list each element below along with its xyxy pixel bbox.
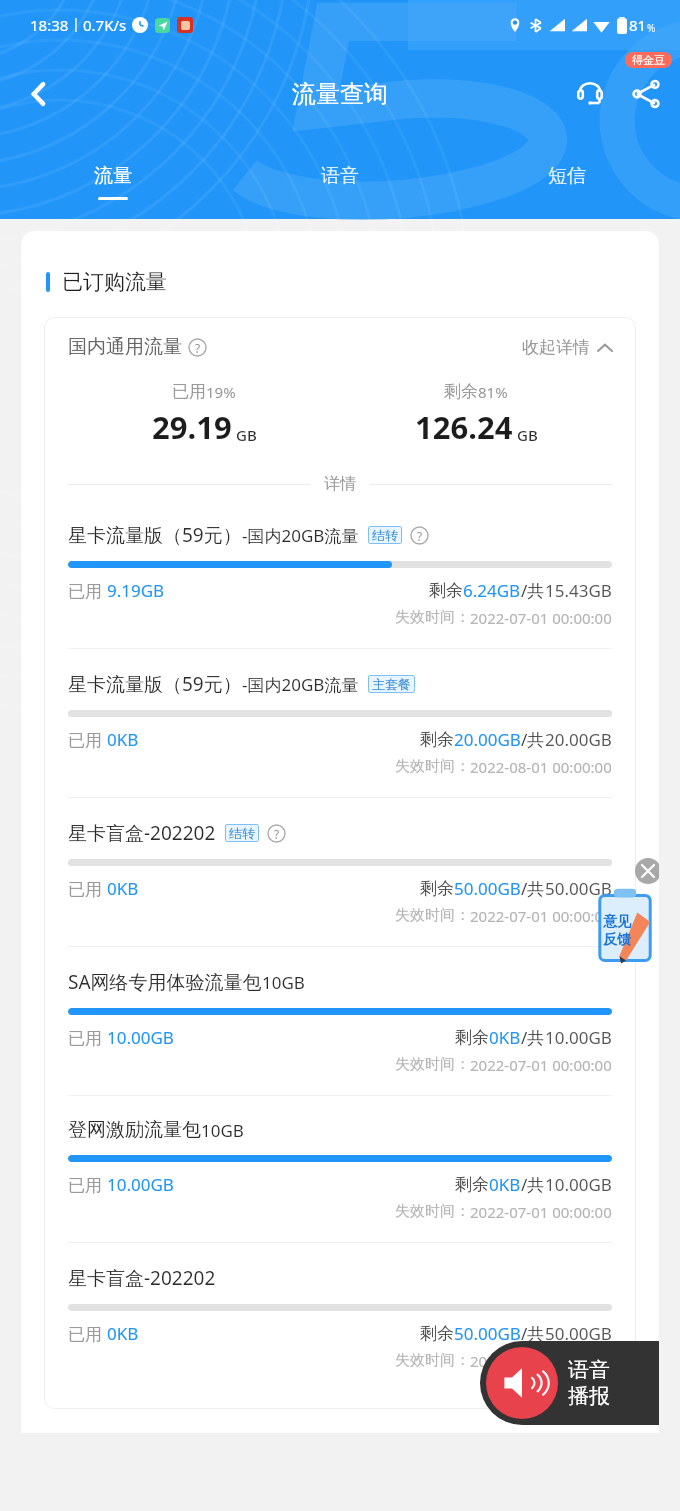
staticText: 短信 — [548, 164, 586, 188]
button[interactable]: 登网激励流量包 — [68, 1096, 612, 1243]
staticText: 18:38 — [30, 15, 69, 35]
staticText: 已订购流量 — [62, 269, 167, 295]
staticText: 50.00GB — [454, 877, 521, 900]
staticText: 已用 — [68, 1322, 107, 1345]
staticText: 19% — [206, 382, 236, 402]
staticText: 50.00GB — [454, 1322, 521, 1345]
staticText: -国内20GB流量 — [242, 524, 359, 547]
staticText: 流量查询 — [292, 79, 388, 109]
staticText: 50.00GB — [545, 877, 612, 900]
staticText: 已用 — [68, 579, 107, 602]
staticText: 失效时间： — [395, 1351, 470, 1370]
staticText: 81% — [478, 382, 508, 402]
staticText: 已用 — [68, 877, 107, 900]
staticText: 0KB — [489, 1026, 521, 1049]
staticText: 流量 — [94, 164, 132, 188]
button[interactable]: 收起详情 — [522, 337, 612, 358]
button[interactable]: 短信 — [453, 149, 680, 215]
staticText: 剩余 — [444, 381, 478, 402]
staticText: ? — [417, 528, 423, 544]
button[interactable]: 语音 — [226, 149, 453, 215]
staticText: 剩余 — [420, 729, 454, 750]
staticText: 剩余 — [455, 1174, 489, 1195]
button[interactable]: SA网络专用体验流量包 — [68, 947, 612, 1096]
staticText: 主套餐 — [372, 676, 411, 692]
button[interactable]: Share — [618, 66, 674, 122]
staticText: 失效时间： — [395, 906, 470, 925]
staticText: 15.43GB — [545, 579, 612, 602]
staticText: % — [647, 21, 656, 35]
staticText: /共 — [521, 1322, 545, 1345]
staticText: 10.00GB — [545, 1026, 612, 1049]
staticText: 结转 — [229, 825, 255, 841]
button[interactable]: 意见反馈 — [597, 888, 653, 962]
staticText: 0KB — [107, 877, 139, 900]
staticText: /共 — [521, 877, 545, 900]
staticText: 已用 — [68, 728, 107, 751]
staticText: GB — [517, 425, 538, 445]
staticText: 29.19 — [152, 406, 232, 448]
staticText: 50.00GB — [545, 1322, 612, 1345]
staticText: 10.00GB — [107, 1173, 174, 1196]
staticText: 反馈 — [603, 931, 631, 949]
staticText: 详情 — [324, 474, 356, 494]
staticText: 126.24 — [415, 406, 513, 448]
button[interactable]: 星卡盲盒-202202 — [68, 1243, 612, 1391]
staticText: 2022-07-01 00:00:00 — [470, 608, 612, 628]
staticText: 播报 — [568, 1383, 610, 1409]
staticText: 2022-07-01 00:00:00 — [470, 1055, 612, 1075]
staticText: 10GB — [262, 971, 305, 994]
staticText: 10.00GB — [545, 1173, 612, 1196]
staticText: 星卡流量版（59元） — [68, 522, 242, 548]
staticText: 已用 — [68, 1173, 107, 1196]
button[interactable]: 星卡流量版（59元） — [68, 649, 612, 798]
staticText: 81 — [629, 15, 647, 35]
staticText: 失效时间： — [395, 757, 470, 776]
staticText: 20.00GB — [545, 728, 612, 751]
staticText: SA网络专用体验流量包 — [68, 969, 262, 995]
staticText: 国内通用流量 — [68, 335, 182, 359]
staticText: /共 — [521, 1026, 545, 1049]
staticText: 失效时间： — [395, 1055, 470, 1074]
staticText: 失效时间： — [395, 608, 470, 627]
staticText: ? — [195, 340, 201, 356]
staticText: 2022-07-01 00:00:00 — [470, 906, 612, 926]
staticText: /共 — [521, 1173, 545, 1196]
button[interactable]: 星卡流量版（59元） — [68, 500, 612, 649]
staticText: 登网激励流量包 — [68, 1118, 201, 1142]
staticText: 2022-08-01 00:00:00 — [470, 757, 612, 777]
button[interactable]: 星卡盲盒-202202 — [68, 798, 612, 947]
staticText: 星卡盲盒-202202 — [68, 1265, 216, 1291]
button[interactable]: 流量 — [0, 149, 226, 215]
staticText: 剩余 — [420, 878, 454, 899]
staticText: 已用 — [172, 381, 206, 402]
staticText: 星卡流量版（59元） — [68, 671, 242, 697]
staticText: 6.24GB — [463, 579, 521, 602]
staticText: ? — [274, 826, 280, 842]
staticText: 0KB — [107, 728, 139, 751]
staticText: 收起详情 — [522, 337, 590, 358]
staticText: 0.7K/s — [83, 15, 127, 35]
staticText: 失效时间： — [395, 1202, 470, 1221]
staticText: 9.19GB — [107, 579, 165, 602]
staticText: 已用 — [68, 1026, 107, 1049]
staticText: 剩余 — [429, 580, 463, 601]
staticText: /共 — [521, 728, 545, 751]
staticText: /共 — [521, 579, 545, 602]
staticText: 10GB — [201, 1119, 244, 1142]
button[interactable]: 语音播报 — [480, 1341, 659, 1425]
button[interactable]: 客服 — [562, 66, 618, 122]
staticText: 0KB — [107, 1322, 139, 1345]
staticText: GB — [236, 425, 257, 445]
staticText: 星卡盲盒-202202 — [68, 820, 216, 846]
staticText: 语音 — [568, 1357, 610, 1383]
staticText: 2022-07-01 00:00:00 — [470, 1202, 612, 1222]
staticText: 2022-08-01 00:00:00 — [470, 1351, 612, 1371]
staticText: 结转 — [372, 527, 398, 543]
button[interactable]: 关闭 — [635, 858, 659, 884]
staticText: 剩余 — [420, 1323, 454, 1344]
button[interactable]: Back — [10, 65, 68, 123]
staticText: 得金豆 — [632, 53, 665, 67]
staticText: 剩余 — [455, 1027, 489, 1048]
staticText: 20.00GB — [454, 728, 521, 751]
